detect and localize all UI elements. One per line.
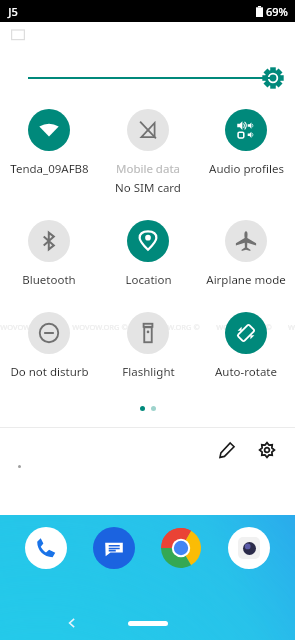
button[interactable]: Edit [213, 436, 241, 464]
staticText: Tenda_09AFB8 [10, 161, 89, 177]
staticText: Flashlight [122, 364, 175, 380]
staticText: Do not disturb [10, 364, 89, 380]
button[interactable]: Home [128, 621, 168, 626]
button[interactable]: Phone [25, 527, 67, 569]
button[interactable]: Messages [93, 527, 135, 569]
staticText: Airplane mode [206, 272, 286, 288]
button[interactable]: Do not disturb [0, 312, 98, 380]
staticText: WOVOW.ORG © [0, 322, 56, 332]
button[interactable]: Settings [253, 436, 281, 464]
staticText: J5 [8, 4, 18, 19]
button[interactable]: Location [99, 220, 197, 288]
staticText: No SIM card [115, 180, 181, 196]
button[interactable]: Bluetooth [0, 220, 98, 288]
staticText: Mobile data [116, 161, 180, 177]
staticText: WOVOW.ORG © [72, 322, 128, 332]
button[interactable]: Camera [228, 527, 270, 569]
staticText: WOVOW.ORG © [144, 322, 200, 332]
button[interactable]: Tenda_09AFB8 [0, 109, 98, 177]
staticText: 69% [266, 4, 288, 19]
button[interactable]: Chrome [160, 527, 202, 569]
button[interactable]: Flashlight [99, 312, 197, 380]
button[interactable]: Auto-rotate [197, 312, 295, 380]
button[interactable]: Airplane mode [197, 220, 295, 288]
staticText: WOVOW.ORG © [216, 322, 272, 332]
staticText: Bluetooth [22, 272, 76, 288]
button[interactable]: Mobile data [99, 109, 197, 196]
button[interactable]: Brightness [263, 68, 283, 88]
staticText: W [288, 322, 295, 332]
button[interactable]: Back [66, 617, 78, 629]
staticText: Location [125, 272, 172, 288]
staticText: Auto-rotate [215, 364, 277, 380]
button[interactable]: Audio profiles [197, 109, 295, 177]
staticText: Audio profiles [209, 161, 284, 177]
